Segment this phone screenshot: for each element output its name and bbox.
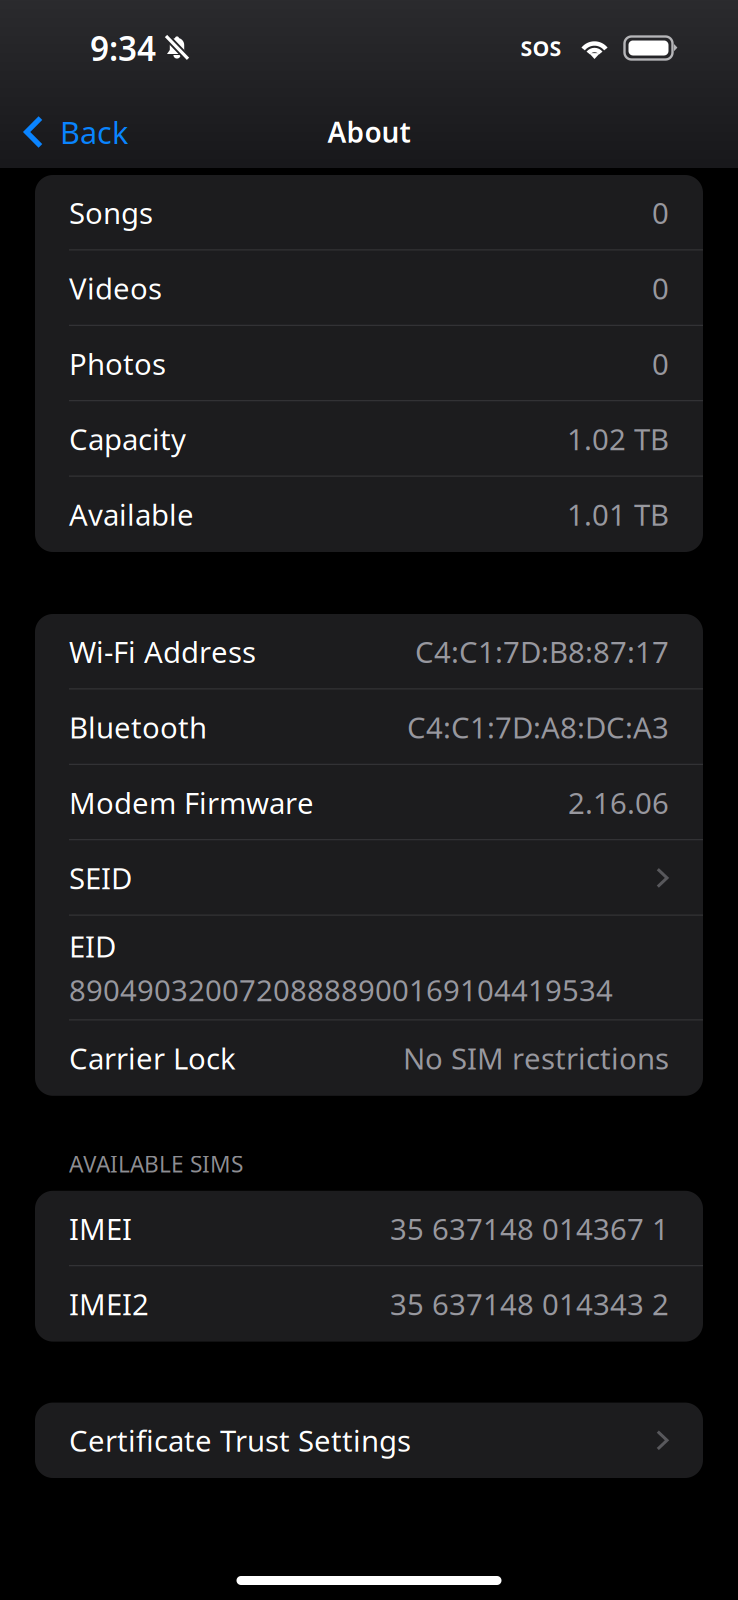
button[interactable]: IMEI2 xyxy=(35,1266,703,1342)
button[interactable]: Wi-Fi Address xyxy=(35,614,703,689)
staticText: Available xyxy=(69,495,194,534)
button[interactable]: EID xyxy=(35,916,703,1020)
staticText: 9:34 xyxy=(90,26,156,70)
staticText: 35 637148 014367 1 xyxy=(390,1209,669,1248)
staticText: EID xyxy=(69,926,116,965)
button[interactable]: Modem Firmware xyxy=(35,765,703,840)
staticText: Back xyxy=(60,112,128,152)
staticText: 2.16.06 xyxy=(568,783,669,822)
button[interactable]: Certificate Trust Settings xyxy=(35,1403,703,1478)
staticText: Photos xyxy=(69,344,166,383)
button[interactable]: IMEI xyxy=(35,1191,703,1266)
button[interactable]: SEID xyxy=(35,840,703,916)
staticText: Carrier Lock xyxy=(69,1039,236,1078)
staticText: IMEI xyxy=(69,1209,132,1248)
staticText: IMEI2 xyxy=(69,1284,149,1323)
staticText: Videos xyxy=(69,269,162,308)
staticText: Bluetooth xyxy=(69,708,207,747)
staticText: 89049032007208888900169104419534 xyxy=(69,970,613,1009)
staticText: C4:C1:7D:B8:87:17 xyxy=(415,632,669,671)
staticText: Songs xyxy=(69,193,153,232)
staticText: 35 637148 014343 2 xyxy=(390,1284,669,1323)
button[interactable]: Back xyxy=(0,96,144,168)
staticText: 0 xyxy=(652,344,669,383)
staticText: 0 xyxy=(652,269,669,308)
staticText: About xyxy=(327,113,410,151)
staticText: Modem Firmware xyxy=(69,783,314,822)
staticText: Certificate Trust Settings xyxy=(69,1421,411,1460)
staticText: Capacity xyxy=(69,419,186,458)
button[interactable]: Capacity xyxy=(35,401,703,477)
staticText: SEID xyxy=(69,858,132,897)
staticText: 1.01 TB xyxy=(567,495,669,534)
button[interactable]: Songs xyxy=(35,175,703,250)
staticText: AVAILABLE SIMS xyxy=(69,1149,243,1179)
button[interactable]: Photos xyxy=(35,326,703,401)
staticText: No SIM restrictions xyxy=(403,1039,669,1078)
staticText: 1.02 TB xyxy=(567,419,669,458)
button[interactable]: Available xyxy=(35,477,703,552)
button[interactable]: Carrier Lock xyxy=(35,1020,703,1096)
button[interactable]: Bluetooth xyxy=(35,689,703,765)
staticText: Wi-Fi Address xyxy=(69,632,256,671)
staticText: SOS xyxy=(520,34,561,62)
staticText: 0 xyxy=(652,193,669,232)
staticText: C4:C1:7D:A8:DC:A3 xyxy=(407,708,669,747)
button[interactable]: Videos xyxy=(35,250,703,326)
